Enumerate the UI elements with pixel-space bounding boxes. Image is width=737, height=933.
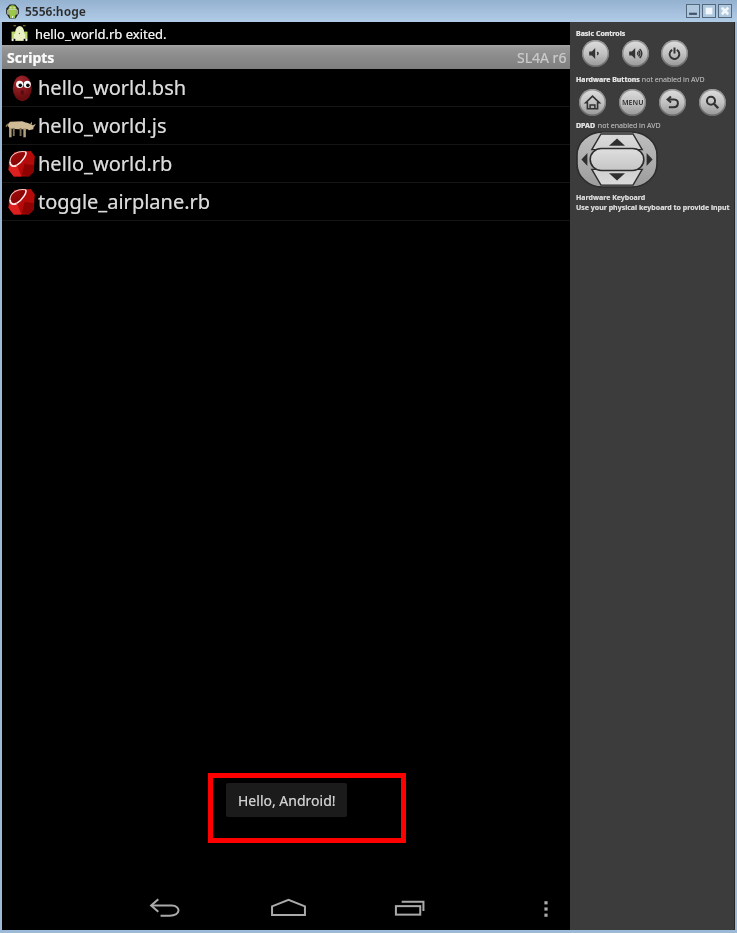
button[interactable]: More options <box>516 885 576 929</box>
button[interactable]: hello_world.js <box>2 107 570 144</box>
button[interactable]: Search <box>699 89 726 116</box>
staticText: MENU <box>622 98 644 108</box>
staticText: not enabled in AVD <box>596 121 661 131</box>
button[interactable]: Back <box>659 89 686 116</box>
button[interactable]: Home <box>579 89 606 116</box>
staticText: Scripts <box>7 48 55 67</box>
button[interactable]: Power <box>661 40 688 67</box>
button[interactable]: Minimize <box>686 4 700 18</box>
staticText: Use your physical keyboard to provide in… <box>576 203 730 213</box>
staticText: toggle_airplane.rb <box>38 188 211 215</box>
staticText: not enabled in AVD <box>640 75 705 85</box>
staticText: 5556:hoge <box>25 3 86 19</box>
staticText: SL4A r6 <box>517 48 567 67</box>
button[interactable]: Recent apps <box>380 885 440 929</box>
button[interactable]: hello_world.rb <box>2 145 570 182</box>
staticText: hello_world.rb <box>38 150 173 177</box>
button[interactable]: Back <box>136 885 196 929</box>
staticText: hello_world.rb exited. <box>35 25 167 43</box>
staticText: Hello, Android! <box>238 791 336 810</box>
staticText: Hardware Keyboard <box>576 193 646 203</box>
button[interactable]: Menu <box>619 89 646 116</box>
button[interactable]: Volume up <box>622 40 649 67</box>
staticText: hello_world.bsh <box>38 74 187 101</box>
button[interactable]: Home <box>258 885 318 929</box>
button[interactable]: Volume down <box>582 40 609 67</box>
button[interactable]: D-pad <box>577 132 657 187</box>
staticText: Hardware Buttons <box>576 75 640 85</box>
button[interactable]: toggle_airplane.rb <box>2 183 570 220</box>
button[interactable]: hello_world.bsh <box>2 69 570 106</box>
staticText: hello_world.js <box>38 112 167 139</box>
staticText: DPAD <box>576 121 596 131</box>
button[interactable]: Maximize <box>702 4 716 18</box>
button[interactable]: Close <box>718 4 732 18</box>
staticText: Basic Controls <box>576 29 626 39</box>
